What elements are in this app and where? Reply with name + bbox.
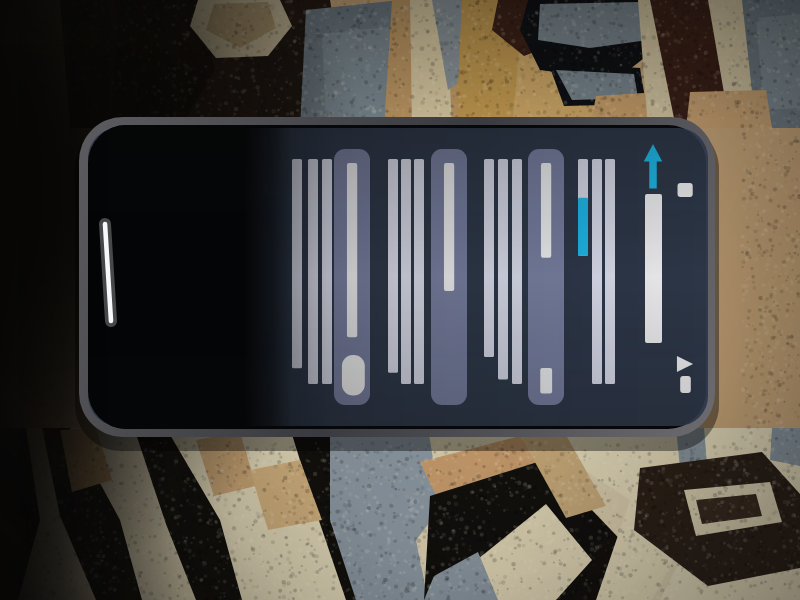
button[interactable] bbox=[431, 149, 467, 405]
button[interactable] bbox=[334, 149, 370, 405]
button[interactable] bbox=[528, 149, 564, 405]
button[interactable]: Back bbox=[639, 143, 667, 189]
button[interactable] bbox=[645, 194, 662, 343]
